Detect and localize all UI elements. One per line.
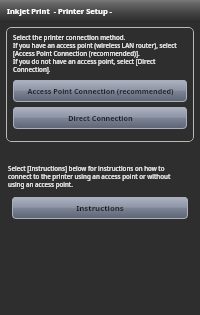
staticText: Select the printer connection method. If… [13,33,177,73]
button[interactable]: Direct Connection [13,107,187,129]
button[interactable]: Instructions [12,197,188,219]
staticText: Instructions [76,203,124,214]
staticText: Inkjet Print - Printer Setup - [7,6,112,16]
staticText: Direct Connection [68,113,133,123]
staticText: Select [Instructions] below for instruct… [8,164,171,188]
staticText: Access Point Connection (recommended) [27,86,174,96]
button[interactable]: Access Point Connection (recommended) [13,80,187,102]
